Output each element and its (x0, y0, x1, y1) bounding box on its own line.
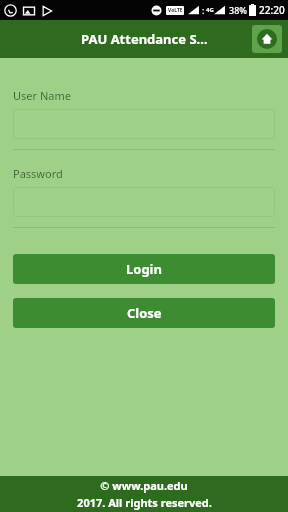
staticText: User Name (13, 88, 71, 103)
staticText: 4G (206, 6, 214, 14)
staticText: 38% (229, 4, 247, 16)
staticText: VoLTE (168, 7, 183, 14)
staticText: 2017. All rights reserved. (77, 495, 212, 510)
staticText: : (202, 4, 205, 16)
staticText: Close (127, 304, 162, 322)
staticText: Login (126, 260, 162, 278)
button[interactable]: Home (252, 25, 282, 53)
button[interactable]: Close (13, 298, 275, 328)
button[interactable] (13, 109, 275, 139)
button[interactable]: Login (13, 254, 275, 284)
staticText: 22:20 (259, 3, 285, 17)
button[interactable] (13, 187, 275, 217)
staticText: Password (13, 166, 63, 181)
staticText: © www.pau.edu (100, 478, 188, 493)
staticText: PAU Attendance S… (81, 30, 208, 48)
